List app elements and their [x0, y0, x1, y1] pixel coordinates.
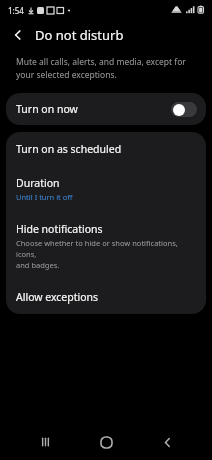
staticText: Choose whether to hide or show notificat…	[16, 238, 196, 270]
staticText: Duration	[16, 176, 60, 190]
staticText: Until I turn it off	[16, 192, 73, 202]
button[interactable]: Back	[152, 427, 182, 457]
staticText: Allow exceptions	[16, 290, 99, 304]
staticText: Turn on as scheduled	[16, 142, 122, 156]
staticText: Mute all calls, alerts, and media, excep…	[16, 56, 186, 81]
button[interactable]: Duration	[6, 166, 206, 212]
button[interactable]: Back	[7, 24, 29, 46]
button[interactable]: Hide notifications	[6, 212, 206, 280]
staticText: Hide notifications	[16, 222, 103, 236]
button[interactable]: Home	[91, 427, 121, 457]
staticText: Do not disturb	[35, 26, 124, 44]
button[interactable]: Recent apps	[31, 427, 61, 457]
staticText: Turn on now	[16, 102, 78, 116]
staticText: 1:54	[8, 5, 24, 16]
button[interactable]: Turn on now toggle	[171, 102, 197, 117]
button[interactable]: Turn on as scheduled	[6, 132, 206, 166]
button[interactable]: Allow exceptions	[6, 280, 206, 314]
button[interactable]: Turn on now	[6, 93, 206, 125]
